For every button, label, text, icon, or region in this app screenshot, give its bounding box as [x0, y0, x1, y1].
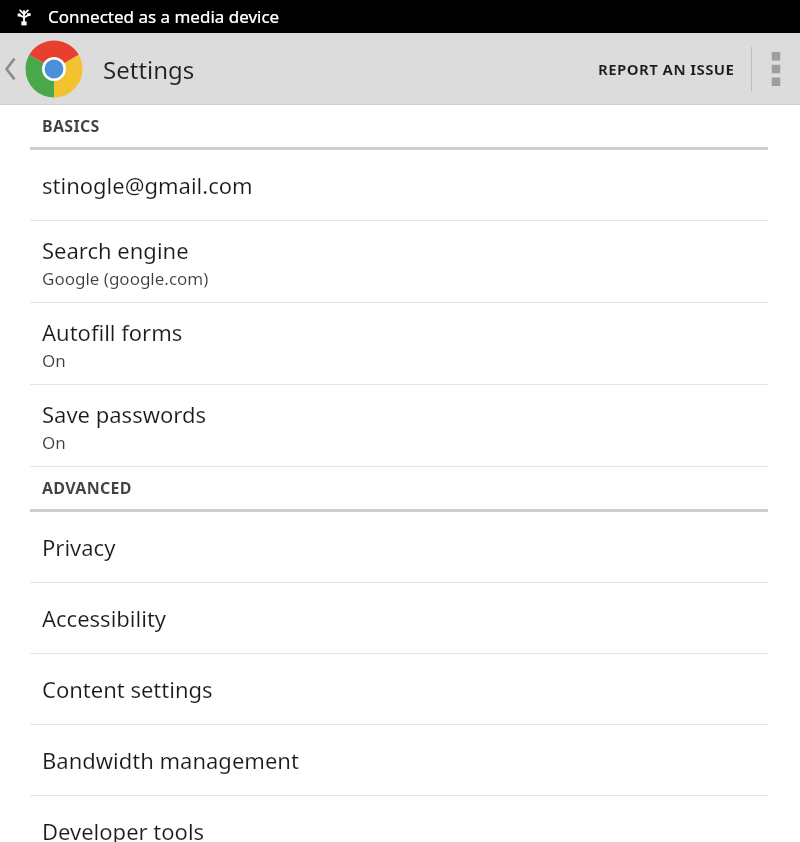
staticText: REPORT AN ISSUE [598, 59, 735, 79]
button[interactable]: Content settings [0, 654, 800, 725]
staticText: stinogle@gmail.com [42, 170, 253, 200]
button[interactable]: REPORT AN ISSUE [582, 33, 751, 105]
staticText: On [42, 431, 66, 454]
button[interactable]: Bandwidth management [0, 725, 800, 796]
button[interactable]: Developer tools [0, 796, 800, 842]
button[interactable]: Privacy [0, 512, 800, 583]
button[interactable]: Accessibility [0, 583, 800, 654]
staticText: Search engine [42, 235, 189, 265]
button[interactable]: Save passwords [0, 385, 800, 467]
staticText: BASICS [42, 115, 100, 137]
staticText: Connected as a media device [48, 5, 280, 28]
staticText: On [42, 349, 66, 372]
staticText: Save passwords [42, 399, 206, 429]
staticText: Accessibility [42, 603, 167, 633]
button[interactable]: Search engine [0, 221, 800, 303]
button[interactable]: Autofill forms [0, 303, 800, 385]
button[interactable]: More options [752, 33, 800, 105]
staticText: Settings [103, 53, 195, 86]
staticText: Google (google.com) [42, 267, 209, 290]
staticText: Content settings [42, 674, 213, 704]
staticText: Bandwidth management [42, 745, 299, 775]
staticText: Privacy [42, 532, 116, 562]
button[interactable]: Navigate up [0, 33, 89, 105]
button[interactable]: stinogle@gmail.com [0, 150, 800, 221]
staticText: Developer tools [42, 816, 205, 842]
staticText: Autofill forms [42, 317, 183, 347]
staticText: ADVANCED [42, 477, 132, 499]
